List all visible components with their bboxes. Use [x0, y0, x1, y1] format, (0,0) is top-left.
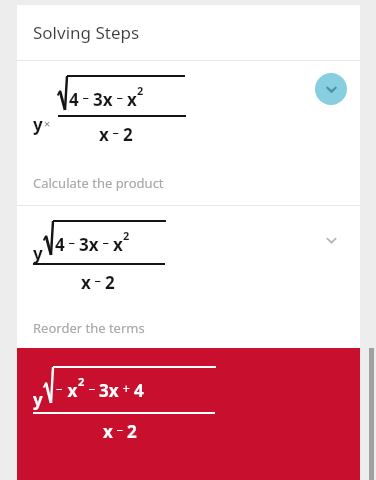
button[interactable]: y — [17, 206, 360, 347]
staticText: – — [91, 271, 105, 289]
staticText: 4 — [69, 88, 79, 111]
staticText: 2 — [78, 374, 85, 389]
staticText: 4 — [134, 379, 144, 402]
button[interactable]: Collapse step — [315, 73, 347, 105]
staticText: 3x — [79, 233, 99, 256]
staticText: Reorder the terms — [33, 319, 145, 337]
staticText: + — [119, 379, 134, 397]
staticText: – — [99, 233, 113, 251]
staticText: x — [81, 271, 91, 294]
staticText: 2 — [105, 271, 115, 294]
staticText: x — [127, 88, 137, 111]
staticText: Solving Steps — [33, 21, 140, 44]
staticText: 2 — [123, 228, 130, 243]
staticText: × — [44, 116, 51, 131]
staticText: 2 — [137, 83, 144, 98]
staticText: – — [79, 88, 93, 106]
staticText: 2 — [127, 420, 137, 443]
staticText: – — [85, 379, 99, 397]
staticText: – — [56, 379, 63, 397]
staticText: x — [103, 420, 113, 443]
staticText: – — [109, 123, 123, 141]
staticText: – — [113, 88, 127, 106]
button[interactable]: Solving Steps — [17, 5, 360, 60]
staticText: x — [113, 233, 123, 256]
staticText: 4 — [55, 233, 65, 256]
staticText: 3x — [93, 88, 113, 111]
staticText: – — [65, 233, 79, 251]
staticText: x — [63, 379, 78, 402]
staticText: Calculate the product — [33, 174, 164, 192]
staticText: y — [33, 113, 43, 136]
button[interactable]: Expand step — [315, 224, 347, 256]
staticText: 2 — [123, 123, 133, 146]
staticText: y — [33, 388, 43, 411]
button[interactable]: y — [17, 61, 360, 205]
staticText: – — [113, 420, 127, 438]
staticText: 3x — [99, 379, 119, 402]
staticText: y — [33, 242, 43, 265]
staticText: x — [99, 123, 109, 146]
button[interactable]: y — [17, 348, 360, 480]
